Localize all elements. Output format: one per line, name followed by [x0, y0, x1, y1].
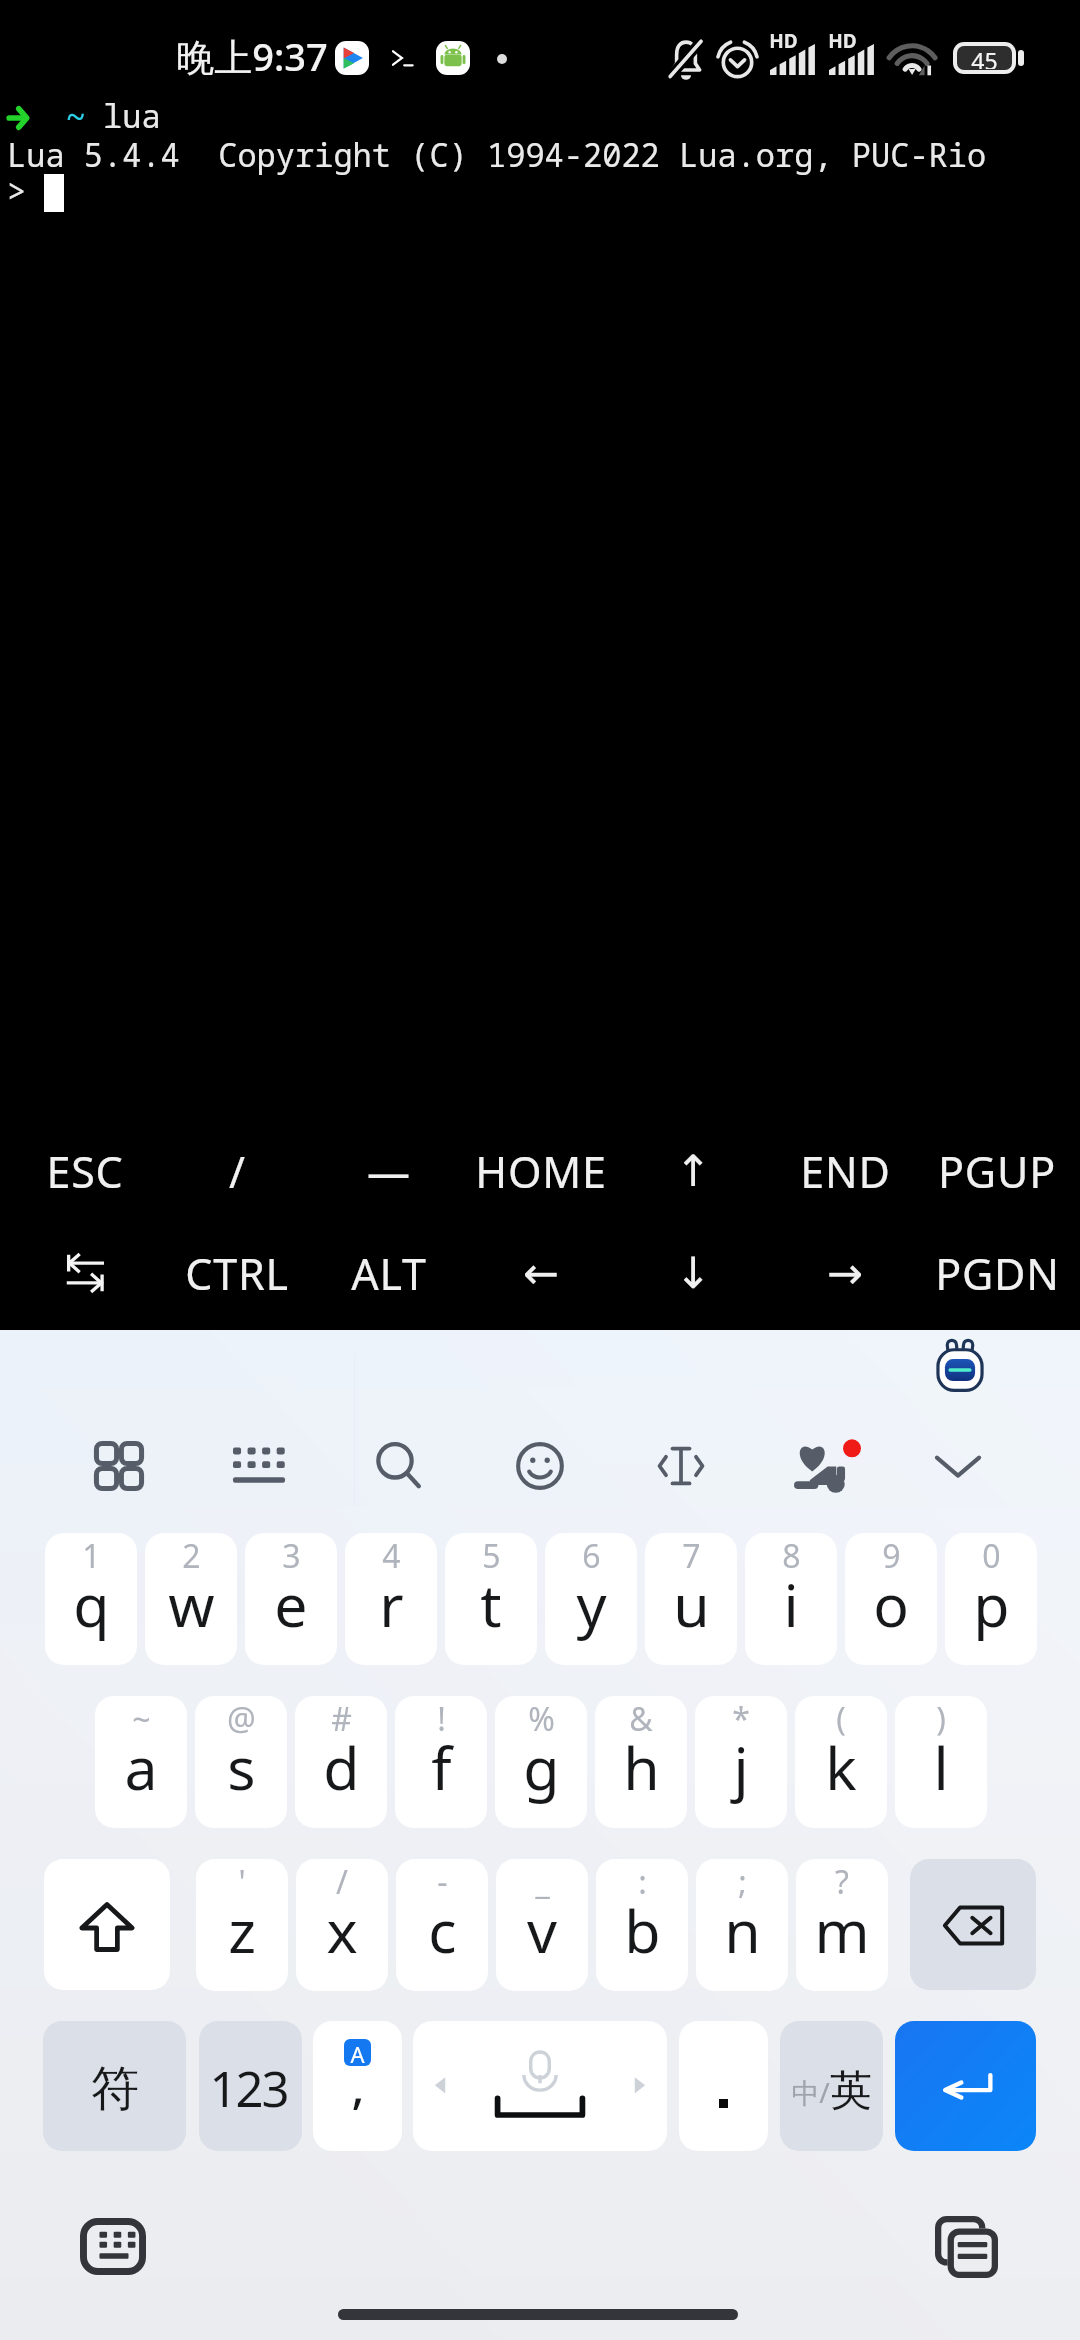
staticText: n [724, 1890, 761, 1970]
staticText: j [733, 1727, 749, 1807]
staticText: g [523, 1727, 560, 1807]
staticText: 符 [91, 2059, 139, 2119]
staticText: ↑ [675, 1146, 712, 1196]
button[interactable]: Switch keyboard [80, 2218, 146, 2275]
staticText: 7 [682, 1534, 701, 1578]
button[interactable]: Left [465, 1222, 617, 1324]
button[interactable]: Tab [8, 1222, 161, 1324]
button[interactable]: ! [395, 1696, 487, 1828]
staticText: 9 [882, 1534, 901, 1578]
button[interactable]: ESC [8, 1120, 161, 1222]
button[interactable]: PGUP [921, 1120, 1073, 1222]
button[interactable]: 9 [845, 1533, 937, 1665]
staticText: s [227, 1727, 256, 1807]
button[interactable]: 7 [645, 1533, 737, 1665]
button[interactable]: Clipboard [935, 2216, 998, 2278]
button[interactable]: Up [617, 1120, 769, 1222]
button[interactable]: CTRL [161, 1222, 313, 1324]
staticText: & [629, 1697, 653, 1741]
staticText: u [673, 1564, 710, 1644]
button[interactable]: & [595, 1696, 687, 1828]
staticText: v [527, 1890, 557, 1970]
staticText: 中/ [791, 2073, 830, 2111]
button[interactable]: 2 [145, 1533, 237, 1665]
staticText: HOME [475, 1142, 607, 1201]
staticText: 0 [982, 1534, 1001, 1578]
staticText: b [624, 1890, 661, 1970]
button[interactable]: - [396, 1859, 488, 1991]
button[interactable]: HOME [465, 1120, 617, 1222]
staticText: → [827, 1248, 864, 1298]
button[interactable]: 0 [945, 1533, 1037, 1665]
staticText: / [229, 1142, 246, 1201]
staticText: 45 [971, 46, 998, 69]
button[interactable]: Emoji [492, 1418, 588, 1514]
button[interactable]: Backspace [910, 1859, 1036, 1990]
staticText: 晚上9:37 [176, 30, 328, 82]
staticText: w [168, 1564, 215, 1644]
button[interactable]: ( [795, 1696, 887, 1828]
staticText: ; [738, 1860, 747, 1904]
button[interactable]: 6 [545, 1533, 637, 1665]
button[interactable]: Space [413, 2021, 667, 2151]
button[interactable]: Search [351, 1418, 447, 1514]
button[interactable]: ALT [313, 1222, 465, 1324]
button[interactable]: Period [679, 2021, 768, 2151]
button[interactable]: Apps [71, 1418, 167, 1514]
button[interactable]: @ [195, 1696, 287, 1828]
button[interactable]: 3 [245, 1533, 337, 1665]
staticText: a [124, 1727, 158, 1807]
button[interactable]: ? [796, 1859, 888, 1991]
button[interactable]: ~ [95, 1696, 187, 1828]
staticText: ← [523, 1248, 560, 1298]
button[interactable]: / [161, 1120, 313, 1222]
button[interactable]: ; [696, 1859, 788, 1991]
button[interactable]: 123 [199, 2021, 302, 2151]
button[interactable]: # [295, 1696, 387, 1828]
staticText: o [873, 1564, 909, 1644]
staticText: 3 [282, 1534, 301, 1578]
button[interactable]: PGDN [921, 1222, 1073, 1324]
staticText: PGDN [935, 1244, 1060, 1303]
button[interactable]: : [596, 1859, 688, 1991]
button[interactable]: 5 [445, 1533, 537, 1665]
staticText: ( [836, 1697, 846, 1741]
staticText: k [825, 1727, 857, 1807]
staticText: 123 [209, 2055, 288, 2122]
staticText: CTRL [185, 1244, 289, 1303]
button[interactable]: 符 [43, 2021, 186, 2151]
button[interactable]: * [695, 1696, 787, 1828]
button[interactable]: / [296, 1859, 388, 1991]
staticText: HD [769, 28, 798, 54]
button[interactable]: END [769, 1120, 921, 1222]
staticText: ! [437, 1697, 446, 1741]
button[interactable]: Enter [895, 2021, 1036, 2151]
staticText: : [638, 1860, 647, 1904]
button[interactable]: Shift [44, 1859, 170, 1990]
button[interactable]: 1 [45, 1533, 137, 1665]
button[interactable]: Down [617, 1222, 769, 1324]
staticText: z [228, 1890, 256, 1970]
button[interactable]: ) [895, 1696, 987, 1828]
staticText: ALT [351, 1244, 427, 1303]
button[interactable]: 4 [345, 1533, 437, 1665]
button[interactable]: Comma [313, 2021, 402, 2151]
button[interactable]: Hide keyboard [910, 1418, 1006, 1514]
button[interactable]: Keyboard layout [211, 1418, 307, 1514]
staticText: END [800, 1142, 891, 1201]
staticText: f [431, 1727, 452, 1807]
button[interactable]: Right [769, 1222, 921, 1324]
staticText: ? [835, 1860, 849, 1904]
button[interactable]: AI assistant [931, 1337, 989, 1395]
button[interactable]: 中/ [780, 2021, 883, 2151]
button[interactable]: _ [496, 1859, 588, 1991]
button[interactable]: 8 [745, 1533, 837, 1665]
button[interactable]: — [313, 1120, 465, 1222]
button[interactable]: Text editing [633, 1418, 729, 1514]
button[interactable]: ' [196, 1859, 288, 1991]
button[interactable]: % [495, 1696, 587, 1828]
button[interactable]: Sticker ad [774, 1418, 870, 1514]
staticText: h [623, 1727, 660, 1807]
staticText: 1 [82, 1534, 101, 1578]
staticText: l [933, 1727, 949, 1807]
